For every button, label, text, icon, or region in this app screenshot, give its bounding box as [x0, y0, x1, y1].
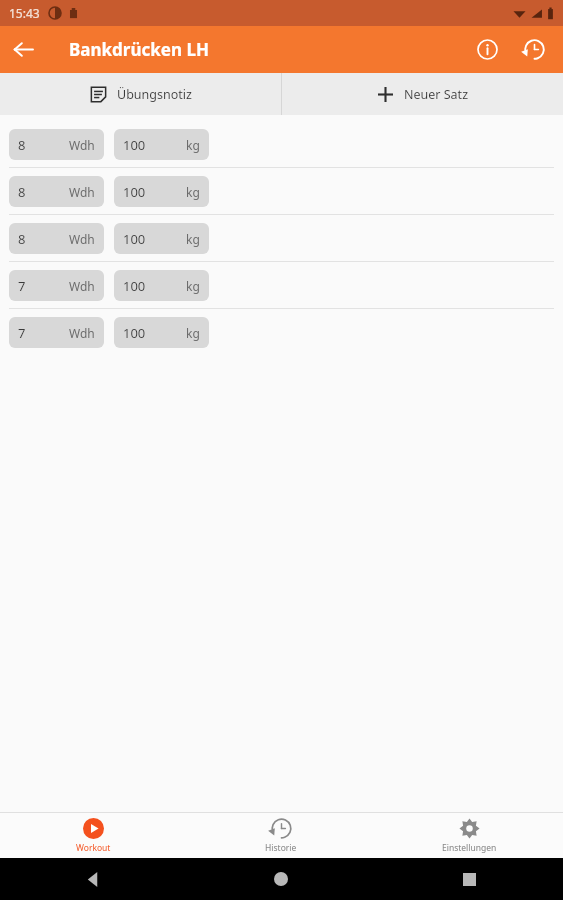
staticText: kg [186, 325, 200, 341]
staticText: 100 [123, 277, 146, 295]
staticText: Übungsnotiz [117, 86, 192, 103]
button[interactable]: Info [464, 26, 511, 73]
staticText: 100 [123, 230, 146, 248]
button[interactable]: 8 [0, 215, 563, 261]
button[interactable]: 100 [114, 176, 209, 207]
staticText: Wdh [69, 231, 95, 247]
button[interactable]: 7 [9, 317, 104, 348]
staticText: Bankdrücken LH [69, 38, 209, 61]
button[interactable]: Back [0, 858, 187, 900]
staticText: 8 [18, 136, 26, 154]
staticText: Wdh [69, 184, 95, 200]
staticText: 8 [18, 230, 26, 248]
staticText: 7 [18, 324, 26, 342]
button[interactable]: 7 [0, 309, 563, 355]
button[interactable]: Back [0, 26, 47, 73]
button[interactable]: Übungsnotiz [0, 73, 281, 115]
staticText: kg [186, 278, 200, 294]
button[interactable]: 8 [0, 121, 563, 167]
staticText: 7 [18, 277, 26, 295]
staticText: 8 [18, 183, 26, 201]
button[interactable]: Workout [0, 813, 187, 858]
button[interactable]: Recents [375, 858, 563, 900]
staticText: Wdh [69, 325, 95, 341]
button[interactable]: 100 [114, 270, 209, 301]
staticText: 100 [123, 183, 146, 201]
staticText: Workout [76, 842, 111, 854]
staticText: kg [186, 231, 200, 247]
staticText: kg [186, 184, 200, 200]
staticText: Historie [265, 842, 297, 854]
staticText: Einstellungen [442, 842, 497, 854]
button[interactable]: 8 [9, 129, 104, 160]
staticText: 100 [123, 324, 146, 342]
button[interactable]: Einstellungen [375, 813, 563, 858]
staticText: Wdh [69, 137, 95, 153]
button[interactable]: 7 [0, 262, 563, 308]
staticText: Wdh [69, 278, 95, 294]
button[interactable]: 100 [114, 223, 209, 254]
staticText: 100 [123, 136, 146, 154]
button[interactable]: 8 [9, 223, 104, 254]
button[interactable]: 100 [114, 317, 209, 348]
button[interactable]: 100 [114, 129, 209, 160]
button[interactable]: 7 [9, 270, 104, 301]
button[interactable]: History [511, 26, 558, 73]
button[interactable]: Historie [187, 813, 375, 858]
button[interactable]: Neuer Satz [282, 73, 563, 115]
staticText: 15:43 [9, 5, 40, 21]
button[interactable]: Home [187, 858, 375, 900]
button[interactable]: 8 [0, 168, 563, 214]
staticText: Neuer Satz [404, 86, 469, 103]
staticText: kg [186, 137, 200, 153]
button[interactable]: 8 [9, 176, 104, 207]
